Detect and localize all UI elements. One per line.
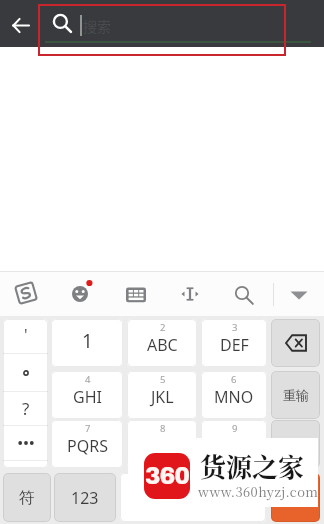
button[interactable]: 符 [3,473,51,522]
button[interactable]: Backspace [271,319,320,367]
staticText: ABC [147,334,178,356]
staticText: 符 [19,488,35,508]
button[interactable]: 1 [51,319,123,367]
staticText: WXYZ [213,435,256,457]
staticText: 4 [85,373,91,386]
staticText: 2 [160,321,166,334]
staticText: 3 [232,321,238,334]
button[interactable]: 9 [201,420,267,468]
button[interactable]: Space [120,473,266,522]
staticText: 搜索 [83,16,111,36]
button[interactable]: 7 [51,420,123,468]
button[interactable] [3,354,48,391]
button[interactable]: Emoji [70,278,96,304]
staticText: TUV [147,435,178,457]
button[interactable]: 重输 [271,371,320,419]
staticText: www.360hyzj.com [198,482,319,501]
staticText: 123 [71,487,99,509]
button[interactable]: 8 [127,420,197,468]
staticText: DEF [220,334,249,356]
button[interactable]: ' [3,319,48,353]
staticText: 1 [82,328,93,354]
staticText: 9 [232,422,238,435]
button[interactable] [271,420,320,468]
button[interactable]: 4 [51,371,123,419]
button[interactable]: Search [232,283,256,307]
button[interactable]: 5 [127,371,197,419]
button[interactable]: Move cursor [178,283,202,307]
button[interactable]: ? [3,392,48,425]
staticText: 8 [160,422,166,435]
button[interactable]: 2 [127,319,197,367]
button[interactable]: 3 [201,319,267,367]
button[interactable]: Hide keyboard [287,283,311,307]
staticText: 360 [145,464,190,489]
staticText: ' [24,324,28,346]
staticText: ? [22,397,30,420]
button[interactable] [3,426,48,460]
button[interactable]: 123 [54,473,116,522]
button[interactable]: Sogou input [15,282,37,304]
staticText: 6 [231,373,237,386]
staticText: 5 [160,373,166,386]
staticText: PQRS [67,435,108,457]
button[interactable]: Keyboard layout [125,284,147,306]
staticText: MNO [214,386,254,408]
button[interactable]: 6 [201,371,267,419]
button[interactable]: Enter [271,473,320,522]
staticText: GHI [73,386,102,408]
button[interactable]: Back [5,12,37,40]
staticText: 货源之家 [200,447,305,484]
staticText: 重输 [283,387,309,403]
staticText: JKL [151,386,174,408]
staticText: 7 [85,422,91,435]
button[interactable]: 搜索 [44,0,316,47]
